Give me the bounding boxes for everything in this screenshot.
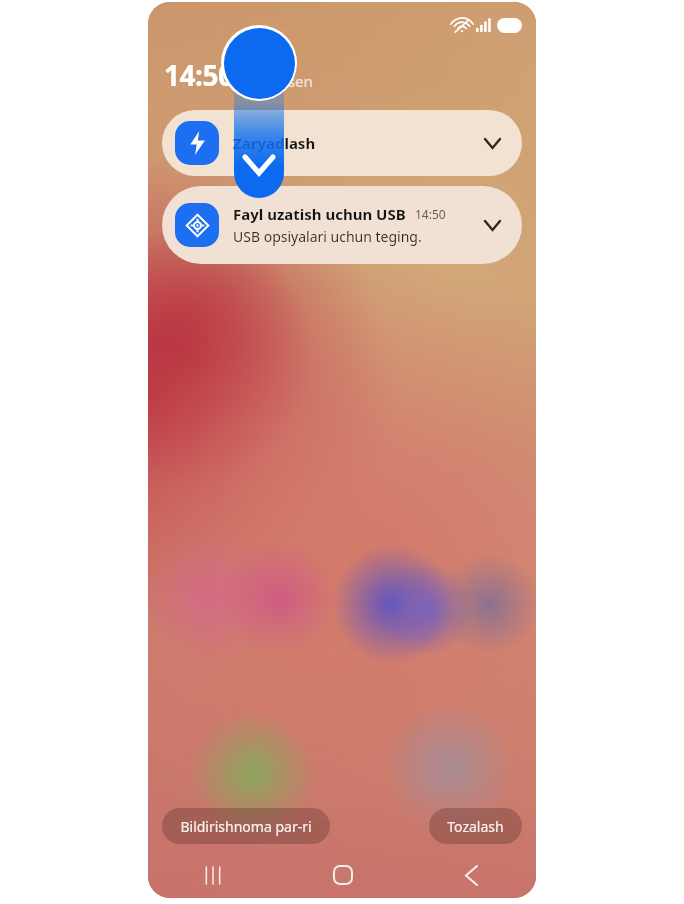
button[interactable]: Drag handle	[221, 25, 297, 101]
button[interactable]: Expand quick settings	[234, 38, 284, 198]
other: Wi-Fi	[453, 17, 471, 33]
button[interactable]: Back	[407, 852, 536, 898]
button[interactable]: Expand notification	[476, 209, 508, 241]
staticText: Fayl uzatish uchun USB	[233, 204, 406, 224]
staticText: USB opsiyalari uchun teging.	[233, 227, 422, 246]
staticText: 14:50	[164, 56, 234, 94]
button[interactable]: Expand notification	[476, 127, 508, 159]
button[interactable]: Home	[278, 852, 407, 898]
staticText: 14:50	[415, 206, 446, 222]
staticText: Bildirishnoma par-ri	[180, 817, 312, 836]
staticText: Zaryadlash	[233, 133, 316, 153]
button[interactable]: Bildirishnoma par-ri	[162, 808, 330, 844]
button[interactable]: Zaryadlash	[162, 110, 522, 176]
other: Signal strength	[476, 18, 491, 32]
other: Battery	[497, 18, 522, 33]
button[interactable]: 14:50	[164, 56, 234, 94]
staticText: Pay, 4-sen	[242, 71, 313, 91]
staticText: Tozalash	[447, 817, 504, 836]
button[interactable]: Tozalash	[429, 808, 522, 844]
button[interactable]: Fayl uzatish uchun USB	[162, 186, 522, 264]
button[interactable]: Recent apps	[148, 852, 278, 898]
